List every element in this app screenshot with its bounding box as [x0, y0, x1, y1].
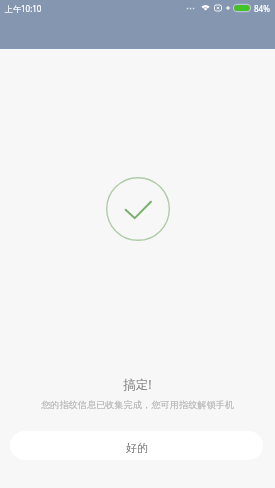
button[interactable]: 好的: [10, 431, 263, 460]
staticText: 好的: [126, 441, 148, 455]
staticText: 上午10:10: [5, 3, 42, 14]
staticText: 搞定!: [123, 376, 152, 393]
staticText: 您的指纹信息已收集完成，您可用指纹解锁手机: [41, 399, 234, 411]
staticText: 84%: [254, 3, 270, 12]
